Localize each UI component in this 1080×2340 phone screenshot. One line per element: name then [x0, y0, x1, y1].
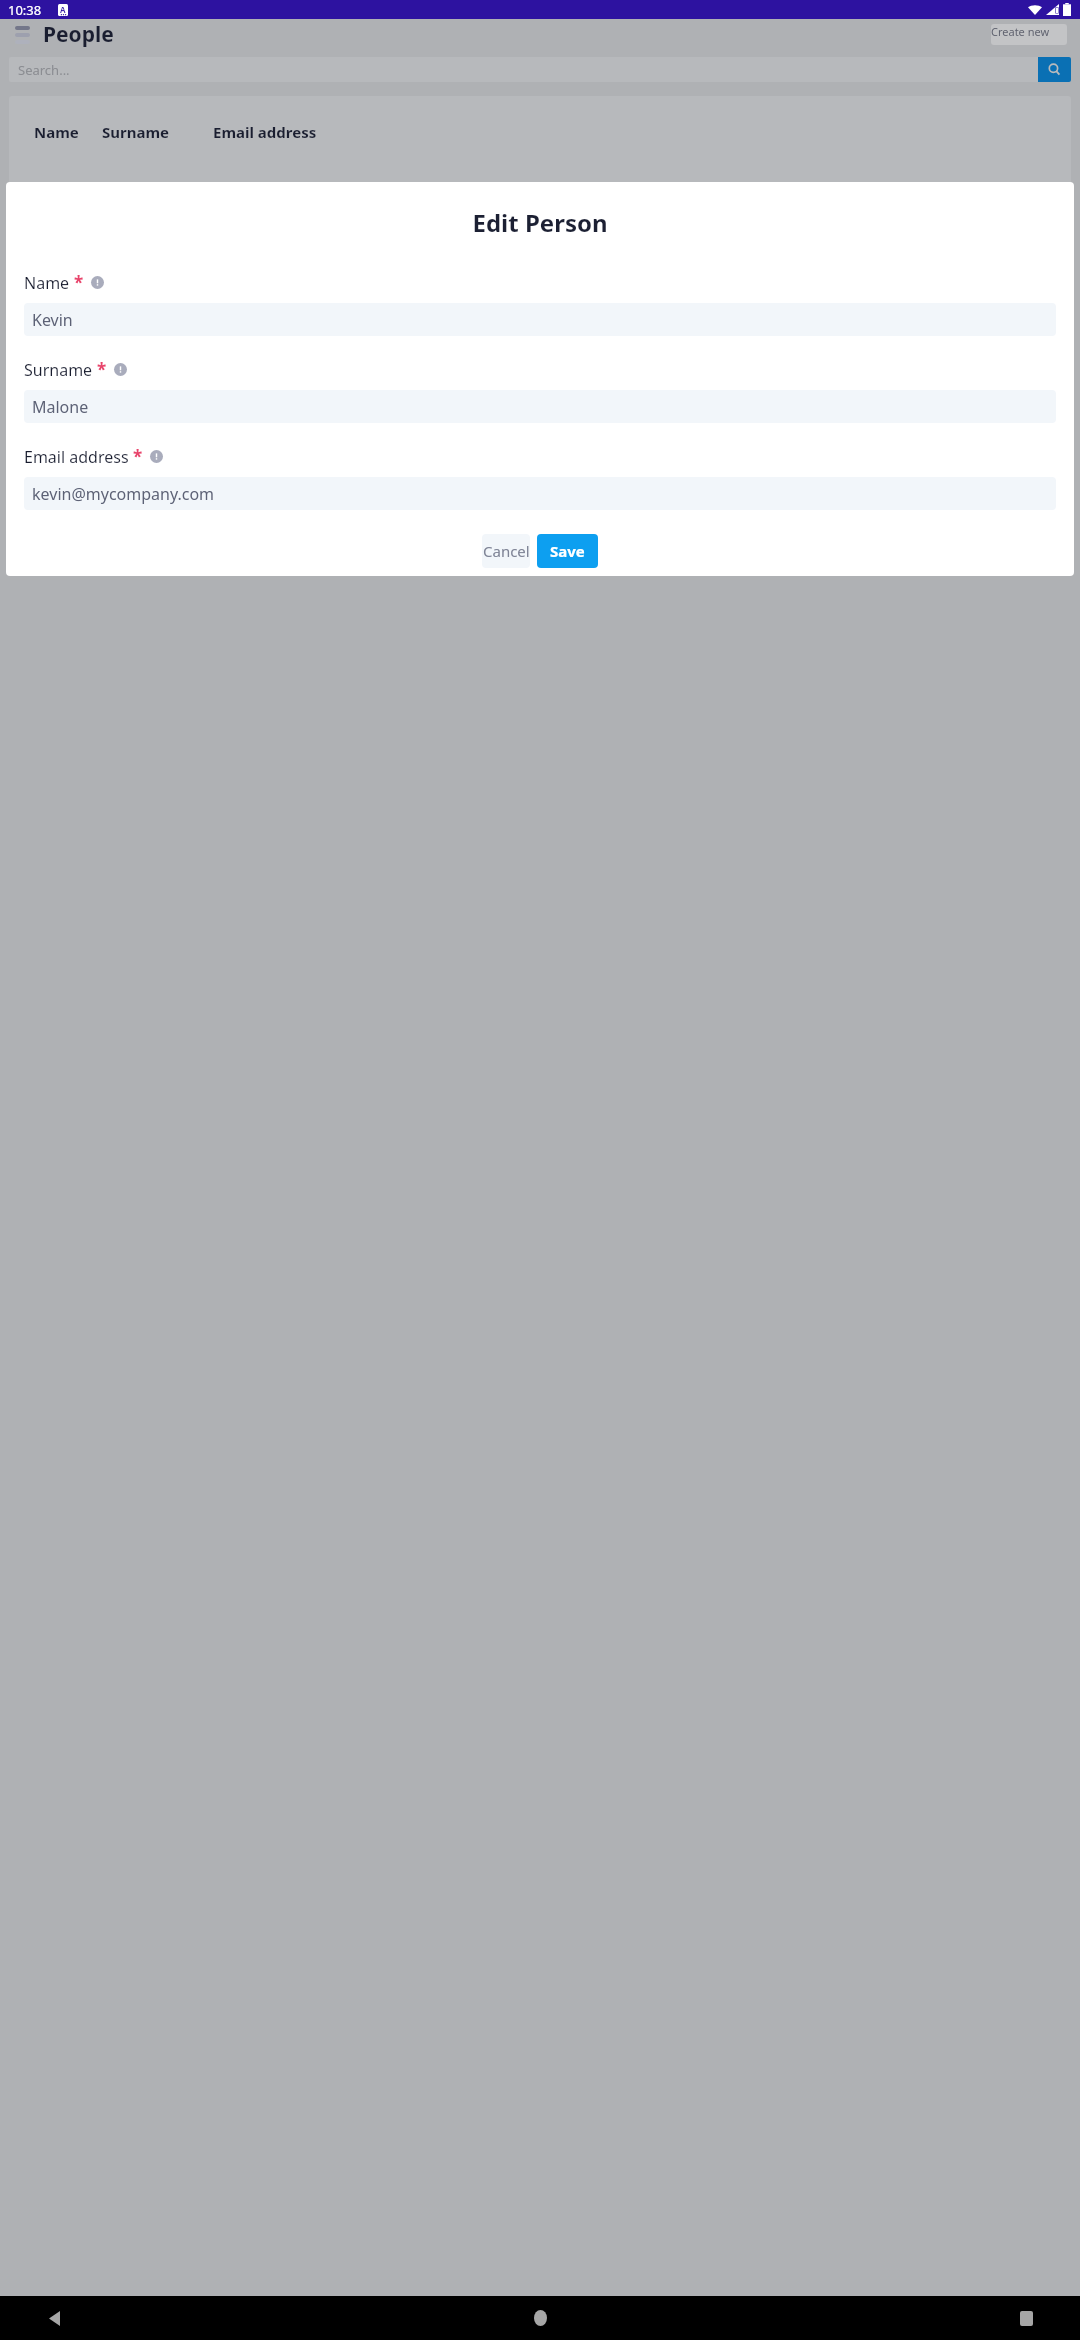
staticText: Kevin — [32, 309, 73, 331]
staticText: Name — [34, 122, 79, 142]
button[interactable]: Back — [34, 2298, 74, 2338]
button[interactable]: More information about Surname — [114, 363, 127, 376]
button[interactable]: Malone — [24, 390, 1056, 423]
staticText: Surname — [102, 122, 170, 142]
button[interactable]: Kevin — [24, 303, 1056, 336]
staticText: kevin@mycompany.com — [32, 483, 215, 505]
staticText: Save — [550, 541, 585, 561]
button[interactable]: Create new person — [991, 24, 1067, 45]
button[interactable]: More information about Name — [91, 276, 104, 289]
button[interactable]: Search — [1038, 57, 1071, 82]
staticText: Email address — [24, 446, 129, 468]
staticText: Search... — [18, 61, 70, 79]
staticText: Edit Person — [6, 206, 1074, 239]
staticText: * — [74, 271, 84, 294]
button[interactable]: Home — [520, 2298, 560, 2338]
staticText: 10:38 — [8, 1, 42, 19]
staticText: * — [133, 445, 143, 468]
button[interactable]: Save — [537, 534, 598, 568]
staticText: A — [60, 4, 66, 15]
staticText: Create new person — [991, 24, 1067, 45]
button[interactable]: Cancel — [482, 534, 530, 568]
button[interactable]: Recent apps — [1006, 2298, 1046, 2338]
button[interactable]: More information about Email address — [150, 450, 163, 463]
staticText: Malone — [32, 396, 89, 418]
staticText: Email address — [213, 122, 317, 142]
staticText: People — [43, 20, 114, 49]
staticText: Cancel — [483, 541, 530, 561]
staticText: Name — [24, 272, 70, 294]
staticText: * — [97, 358, 107, 381]
staticText: Surname — [24, 359, 93, 381]
button[interactable]: kevin@mycompany.com — [24, 477, 1056, 510]
